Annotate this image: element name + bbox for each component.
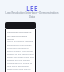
- staticText: Lee is a modern reading experience that …: [7, 40, 34, 72]
- staticText: Low Resolution Interface • Demonstration…: [4, 11, 60, 18]
- staticText: Generated overview of the demonstration …: [7, 31, 34, 40]
- button[interactable]: [5, 22, 36, 29]
- staticText: LEE: [26, 4, 38, 12]
